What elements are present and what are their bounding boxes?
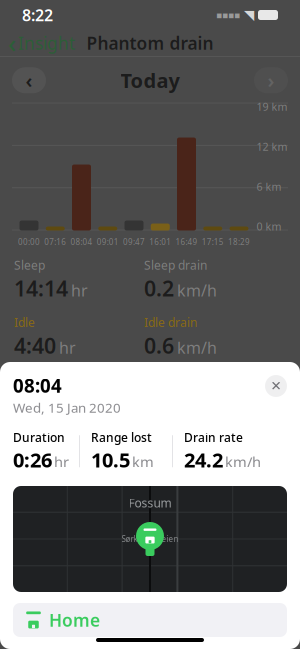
button[interactable]: Home <box>13 603 287 637</box>
staticText: 08:04 <box>70 237 92 247</box>
staticText: Phantom drain <box>86 31 213 54</box>
staticText: Home <box>49 608 100 631</box>
staticText: 0.6 <box>144 331 174 360</box>
staticText: Duration <box>13 429 65 445</box>
staticText: › <box>267 67 274 94</box>
staticText: 17:15 <box>202 237 224 247</box>
staticText: 10.5 <box>91 446 130 473</box>
staticText: 07:16 <box>44 237 66 247</box>
staticText: Drain rate <box>184 429 243 445</box>
staticText: km/h <box>225 452 261 471</box>
staticText: 14:14 <box>14 274 68 302</box>
staticText: 8:22 <box>22 4 53 26</box>
staticText: Insight <box>18 31 75 54</box>
staticText: km/h <box>177 337 217 358</box>
staticText: Sleep <box>14 257 45 273</box>
staticText: Range lost <box>91 429 152 445</box>
staticText: ‹ <box>8 26 16 60</box>
button[interactable]: Close <box>265 375 287 397</box>
staticText: hr <box>59 337 76 358</box>
staticText: 24.2 <box>184 446 223 473</box>
staticText: 09:47 <box>123 237 145 247</box>
staticText: ✕ <box>270 378 281 393</box>
staticText: km/h <box>177 280 217 301</box>
staticText: 09:01 <box>97 237 119 247</box>
staticText: ◥ <box>244 7 254 22</box>
staticText: 18:29 <box>228 237 250 247</box>
staticText: ‹ <box>25 67 32 94</box>
staticText: 08:04 <box>13 373 62 398</box>
staticText: 19 km <box>256 100 287 114</box>
staticText: Fossum <box>128 495 171 511</box>
staticText: 12 km <box>256 139 287 154</box>
button[interactable]: Next day <box>254 67 288 93</box>
staticText: 16:49 <box>175 237 197 247</box>
staticText: Idle <box>14 314 35 330</box>
button[interactable]: ‹ <box>0 22 75 64</box>
staticText: hr <box>54 452 69 471</box>
staticText: Sørkedalsveien <box>121 534 178 544</box>
staticText: 0.2 <box>144 274 174 302</box>
button[interactable]: Previous day <box>12 67 46 93</box>
staticText: 00:00 <box>18 237 40 247</box>
staticText: Sleep drain <box>144 257 207 273</box>
staticText: ▪▪▪▪ <box>216 10 240 20</box>
staticText: 16:01 <box>149 237 171 247</box>
staticText: 0:26 <box>13 446 52 473</box>
staticText: hr <box>71 280 88 301</box>
staticText: Idle drain <box>144 314 197 330</box>
staticText: km <box>132 452 154 471</box>
staticText: Today <box>120 67 179 94</box>
staticText: Wed, 15 Jan 2020 <box>13 399 121 416</box>
staticText: 6 km <box>256 179 281 194</box>
staticText: 4:40 <box>14 331 56 360</box>
staticText: 0 km <box>256 219 281 234</box>
